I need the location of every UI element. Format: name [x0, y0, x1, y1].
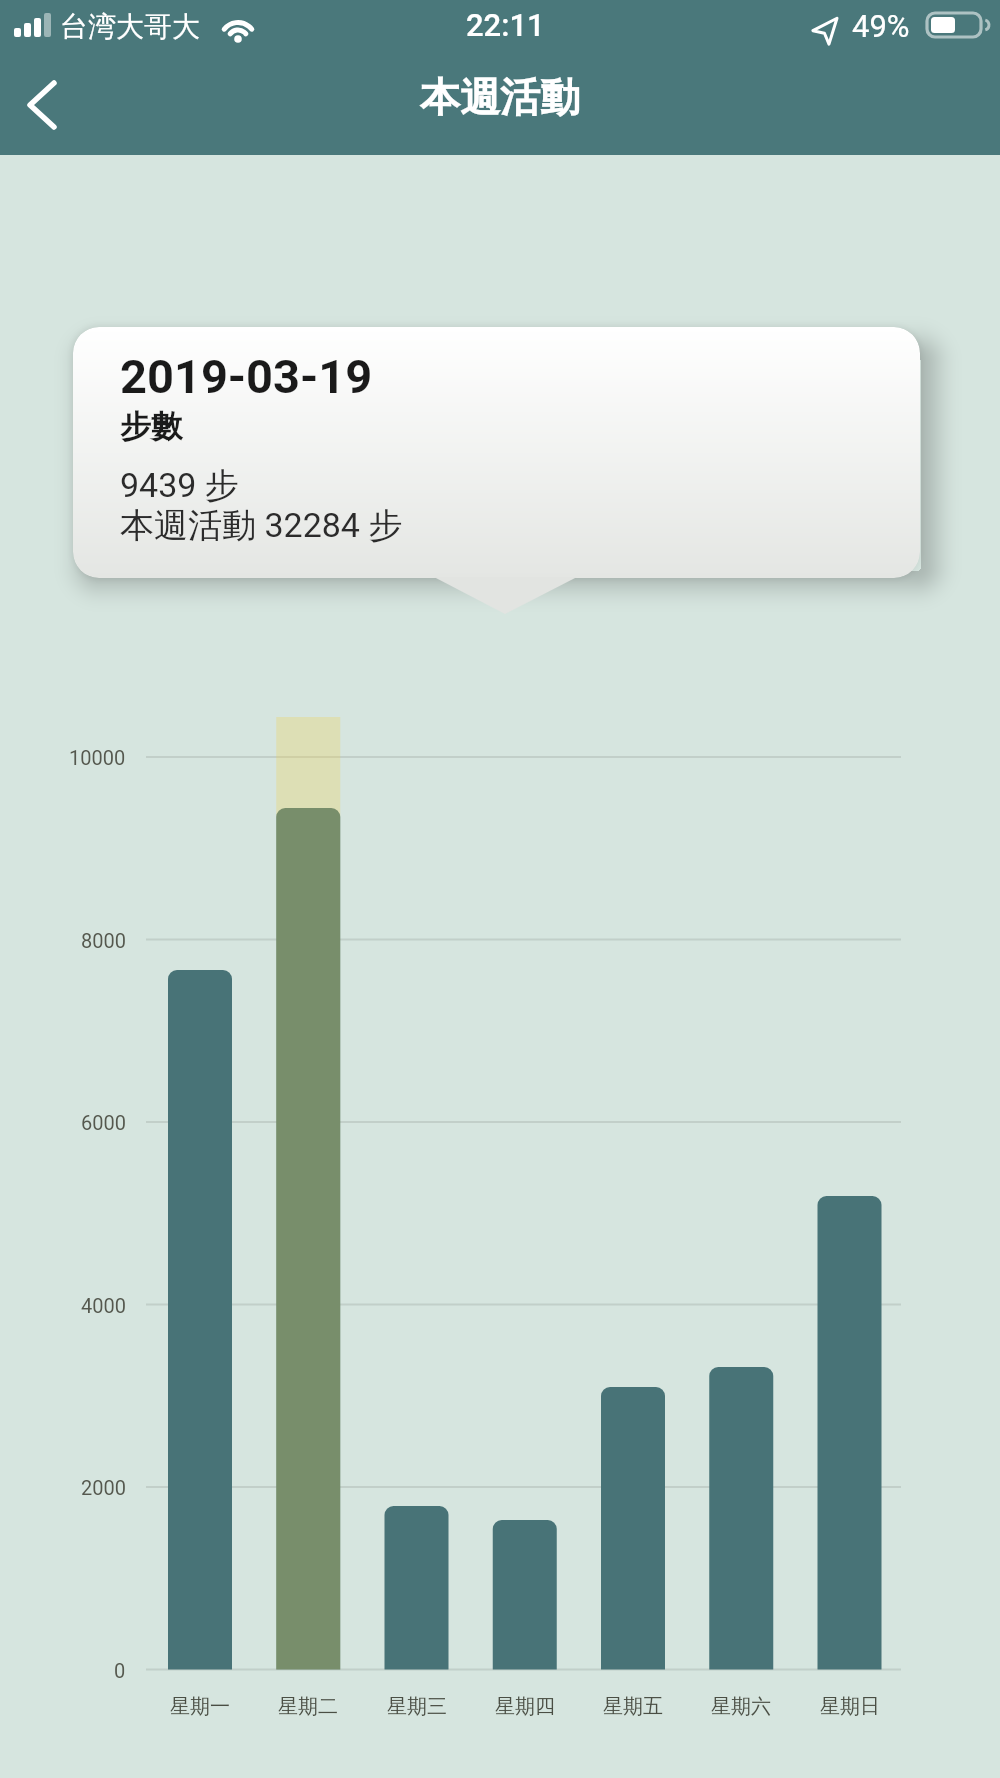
staticText: 本週活動 32284 步	[120, 504, 403, 547]
button[interactable]: 星期五	[573, 1694, 693, 1719]
staticText: 星期一	[170, 1694, 230, 1719]
staticText: 9439 步	[120, 464, 239, 507]
button[interactable]: 2019-03-19	[73, 327, 920, 578]
button[interactable]: 星期六	[681, 1694, 801, 1719]
staticText: 2019-03-19	[120, 349, 373, 404]
staticText: 4000	[81, 1294, 126, 1317]
staticText: 10000	[69, 746, 126, 769]
staticText: 星期三	[387, 1694, 447, 1719]
staticText: 0	[114, 1659, 126, 1682]
staticText: 49%	[852, 8, 910, 44]
staticText: 星期四	[495, 1694, 555, 1719]
staticText: 星期二	[278, 1694, 338, 1719]
staticText: 台湾大哥大	[60, 9, 200, 44]
button[interactable]: 星期一	[140, 1694, 260, 1719]
button[interactable]: 星期二	[248, 1694, 368, 1719]
staticText: 6000	[81, 1111, 126, 1134]
staticText: 2000	[81, 1476, 126, 1499]
staticText: 本週活動	[420, 72, 580, 122]
staticText: 步數	[120, 407, 182, 446]
staticText: 星期五	[603, 1694, 663, 1719]
staticText: 星期六	[711, 1694, 771, 1719]
staticText: 星期日	[820, 1694, 880, 1719]
button[interactable]	[10, 70, 80, 140]
button[interactable]: 星期三	[357, 1694, 477, 1719]
button[interactable]: 星期四	[465, 1694, 585, 1719]
staticText: 8000	[81, 929, 126, 952]
staticText: 22:11	[466, 7, 545, 43]
button[interactable]: 星期日	[790, 1694, 910, 1719]
